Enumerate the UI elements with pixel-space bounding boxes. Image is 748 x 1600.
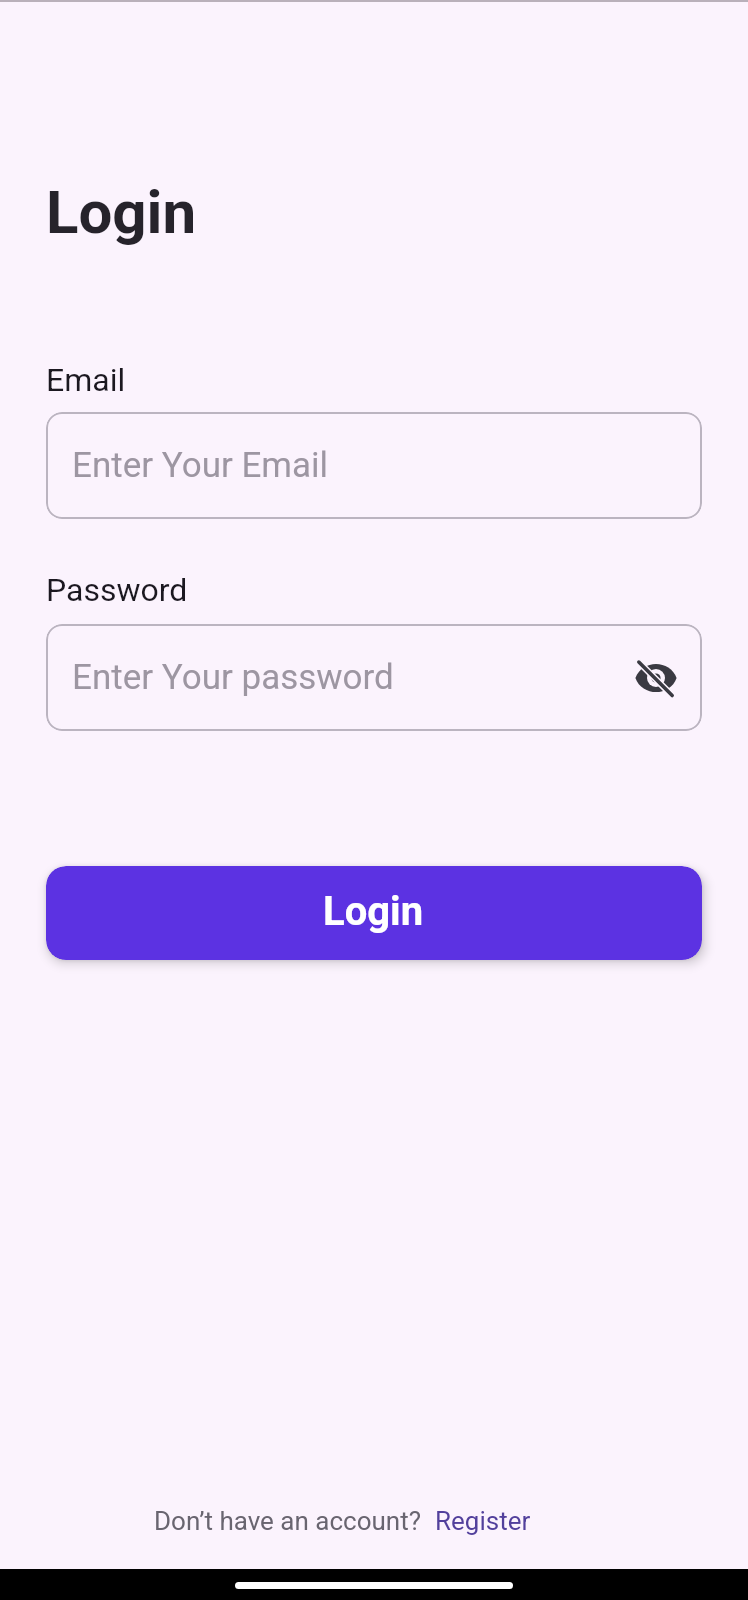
staticText: Don’t have an account?	[154, 1506, 421, 1536]
button[interactable]: Enter Your password	[46, 624, 702, 731]
button[interactable]: Show password	[632, 654, 680, 702]
button[interactable]: Register	[435, 1506, 531, 1536]
staticText: Email	[46, 361, 126, 399]
staticText: Enter Your Email	[72, 445, 329, 486]
button[interactable]: Enter Your Email	[46, 412, 702, 519]
staticText: Enter Your password	[72, 657, 394, 698]
staticText: Login	[46, 177, 197, 247]
button[interactable]: Login	[46, 866, 702, 960]
staticText: Password	[46, 571, 188, 609]
staticText: Register	[435, 1506, 531, 1536]
staticText: Login	[323, 888, 424, 935]
